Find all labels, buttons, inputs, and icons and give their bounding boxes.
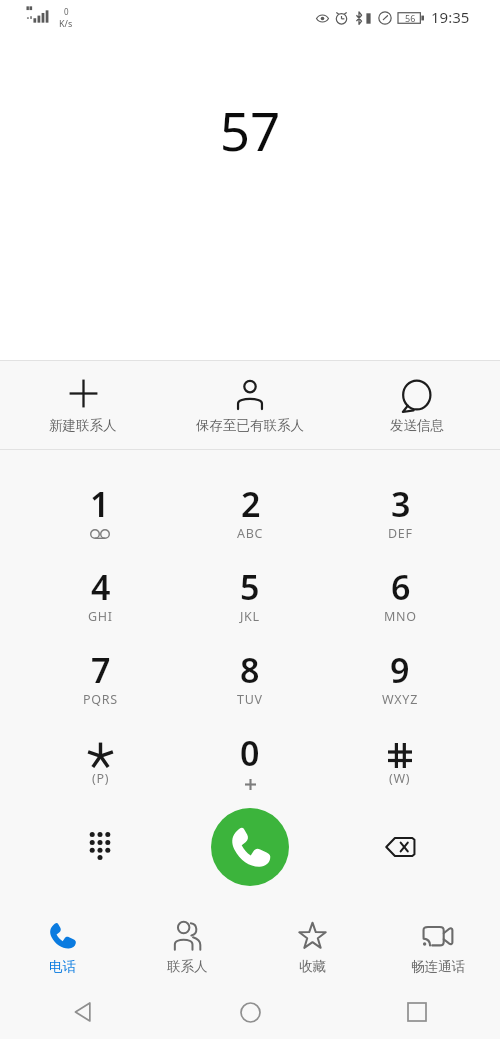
button[interactable]: 0 <box>175 730 325 814</box>
staticText: 保存至已有联系人 <box>196 417 304 434</box>
staticText: 电话 <box>49 958 76 975</box>
staticText: 0 <box>64 6 69 17</box>
staticText: 联系人 <box>167 958 208 975</box>
button[interactable]: Recents <box>392 987 442 1037</box>
button[interactable]: Call <box>211 808 289 886</box>
staticText: GHI <box>88 608 113 625</box>
staticText: TUV <box>237 691 263 708</box>
staticText: JKL <box>240 608 260 625</box>
button[interactable]: Delete <box>368 815 432 879</box>
button[interactable]: 7 <box>25 647 175 730</box>
staticText: 收藏 <box>299 958 326 975</box>
staticText: 新建联系人 <box>49 417 117 434</box>
button[interactable]: 联系人 <box>125 897 250 985</box>
staticText: 8 <box>240 647 260 693</box>
staticText: 4 <box>91 564 111 610</box>
button[interactable]: Home <box>225 987 275 1037</box>
staticText: 19:35 <box>431 7 470 27</box>
staticText: PQRS <box>83 691 118 708</box>
staticText: DEF <box>388 525 413 542</box>
staticText: MNO <box>384 608 417 625</box>
staticText: K/s <box>59 17 73 29</box>
button[interactable]: 3 <box>325 481 475 564</box>
button[interactable]: 收藏 <box>250 897 375 985</box>
button[interactable]: Back <box>58 987 108 1037</box>
button[interactable]: (W) <box>325 730 475 814</box>
staticText: 0 <box>240 730 260 776</box>
staticText: 发送信息 <box>390 417 444 434</box>
button[interactable]: 2 <box>175 481 325 564</box>
button[interactable]: 6 <box>325 564 475 647</box>
button[interactable]: 保存至已有联系人 <box>166 361 333 449</box>
button[interactable]: 新建联系人 <box>0 361 166 449</box>
button[interactable]: 电话 <box>0 897 125 985</box>
staticText: (W) <box>389 770 411 787</box>
button[interactable]: Dialpad <box>68 815 132 879</box>
button[interactable]: 畅连通话 <box>375 897 500 985</box>
button[interactable]: (P) <box>25 730 175 814</box>
staticText: 6 <box>391 564 411 610</box>
button[interactable]: 9 <box>325 647 475 730</box>
staticText: 57 <box>0 94 500 166</box>
button[interactable]: 发送信息 <box>333 361 500 449</box>
staticText: (P) <box>92 770 110 787</box>
staticText: 2 <box>241 481 261 527</box>
staticText: 3 <box>391 481 411 527</box>
button[interactable]: 4 <box>25 564 175 647</box>
staticText: 7 <box>91 647 111 693</box>
staticText: 畅连通话 <box>411 958 465 975</box>
staticText: ABC <box>237 525 264 542</box>
staticText: 9 <box>390 647 410 693</box>
staticText: 56 <box>405 12 416 24</box>
button[interactable]: 8 <box>175 647 325 730</box>
button[interactable]: 5 <box>175 564 325 647</box>
button[interactable]: 1 <box>25 481 175 564</box>
staticText: WXYZ <box>382 691 418 708</box>
staticText: 5 <box>240 564 260 610</box>
staticText: 1 <box>90 481 110 527</box>
